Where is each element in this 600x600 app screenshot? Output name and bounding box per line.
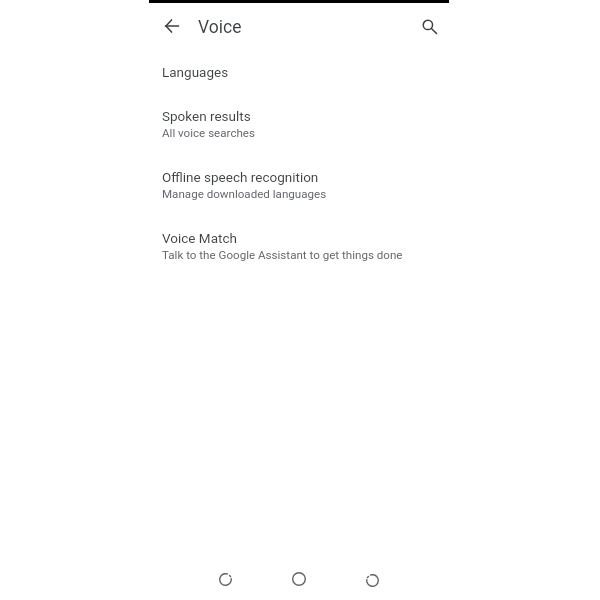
staticText: Languages <box>162 64 229 80</box>
staticText: Manage downloaded languages <box>162 187 327 201</box>
button[interactable]: Search <box>409 6 449 46</box>
button[interactable]: Home <box>279 559 319 599</box>
staticText: Offline speech recognition <box>162 169 319 185</box>
button[interactable]: Back <box>205 559 245 599</box>
staticText: Talk to the Google Assistant to get thin… <box>162 248 403 262</box>
button[interactable]: Offline speech recognition <box>149 159 449 209</box>
button[interactable]: Spoken results <box>149 98 449 148</box>
button[interactable]: Recents <box>352 560 392 600</box>
button[interactable]: Languages <box>149 54 449 90</box>
staticText: Voice <box>198 17 242 38</box>
button[interactable]: Back <box>152 6 192 46</box>
staticText: All voice searches <box>162 126 255 140</box>
button[interactable]: Voice Match <box>149 220 449 270</box>
staticText: Spoken results <box>162 108 251 124</box>
staticText: Voice Match <box>162 230 237 246</box>
